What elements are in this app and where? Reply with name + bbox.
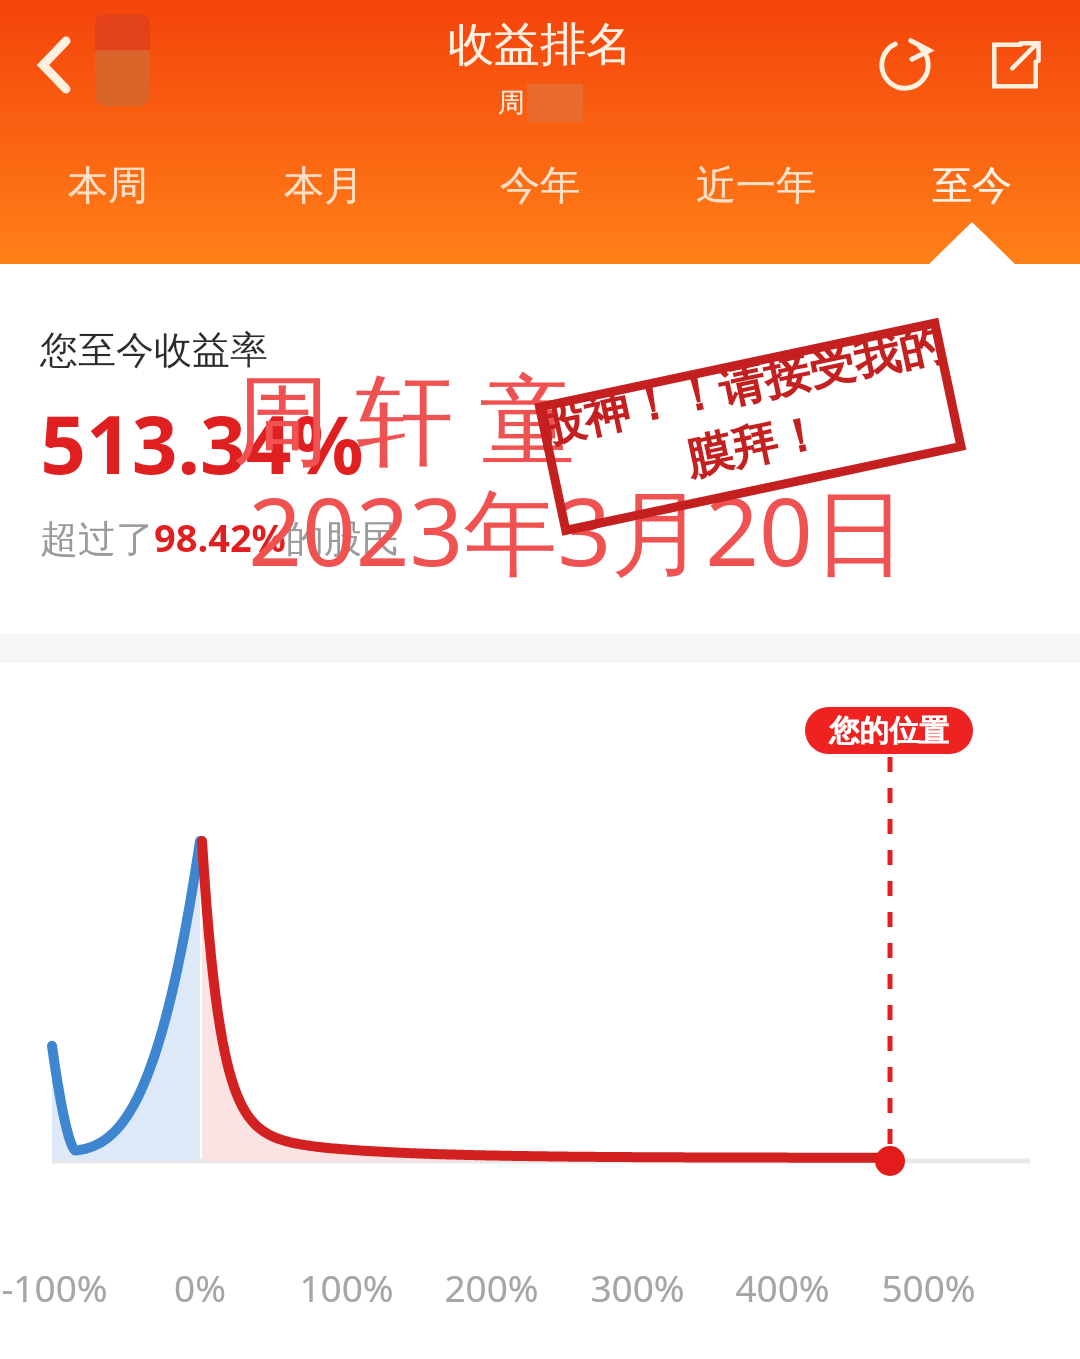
staticText: 2023年3月20日 (248, 466, 907, 594)
button[interactable]: 近一年 (648, 160, 864, 240)
staticText: 至今 (932, 160, 1012, 210)
staticText: 本周 (68, 160, 148, 210)
button[interactable]: 您的位置 (805, 707, 973, 754)
staticText: 今年 (500, 160, 580, 210)
button[interactable]: 今年 (432, 160, 648, 240)
button[interactable]: 本月 (216, 160, 432, 240)
staticText: 您至今收益率 (40, 326, 268, 374)
staticText: 200% (444, 1262, 539, 1312)
staticText: 周 轩 童 (232, 350, 577, 484)
button[interactable]: Share (972, 22, 1058, 108)
staticText: 近一年 (696, 160, 816, 210)
staticText: 100% (299, 1262, 394, 1312)
button[interactable]: Refresh (862, 22, 948, 108)
staticText: 0% (174, 1262, 226, 1312)
staticText: 本月 (284, 160, 364, 210)
staticText: 超过了98.42%的股民 (40, 511, 400, 563)
staticText: 收益排名 (448, 16, 632, 74)
staticText: 513.34% (40, 388, 364, 497)
staticText: 400% (735, 1262, 830, 1312)
button[interactable]: 至今 (864, 160, 1080, 240)
staticText: 500% (881, 1262, 976, 1312)
staticText: -100% (1, 1262, 108, 1312)
staticText: 您的位置 (829, 712, 949, 750)
staticText: 股神！！请接受我的膜拜！ (520, 312, 976, 520)
button[interactable]: 本周 (0, 160, 216, 240)
staticText: 300% (590, 1262, 685, 1312)
staticText: 周 (498, 86, 525, 120)
button[interactable]: Back (15, 25, 95, 105)
